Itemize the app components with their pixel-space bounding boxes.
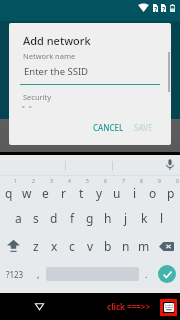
staticText: ? bbox=[162, 5, 166, 13]
button[interactable]: 8 bbox=[126, 176, 144, 204]
staticText: 9 bbox=[158, 178, 161, 185]
button[interactable]: 7 bbox=[108, 176, 126, 204]
staticText: Add network bbox=[23, 33, 91, 48]
staticText: j bbox=[124, 210, 128, 226]
staticText: f bbox=[70, 210, 75, 226]
button[interactable]: 1 bbox=[0, 176, 18, 204]
button[interactable]: 0 bbox=[162, 176, 180, 204]
staticText: e bbox=[42, 185, 49, 201]
staticText: o bbox=[149, 185, 157, 201]
staticText: p bbox=[167, 185, 175, 201]
button[interactable]: a bbox=[9, 204, 27, 232]
staticText: m bbox=[138, 238, 150, 254]
button[interactable]: d bbox=[45, 204, 63, 232]
staticText: l bbox=[160, 210, 164, 226]
button[interactable]: x bbox=[45, 232, 63, 260]
staticText: 5 bbox=[86, 178, 89, 185]
button[interactable]: j bbox=[117, 204, 135, 232]
button[interactable]: 9 bbox=[144, 176, 162, 204]
button[interactable]: z bbox=[27, 232, 45, 260]
staticText: c bbox=[69, 238, 75, 254]
button[interactable]: m bbox=[135, 232, 153, 260]
button[interactable]: 2 bbox=[18, 176, 36, 204]
staticText: v bbox=[87, 238, 94, 254]
staticText: SAVE bbox=[134, 122, 153, 133]
button[interactable]: , bbox=[30, 260, 46, 288]
button[interactable]: g bbox=[81, 204, 99, 232]
staticText: 1 bbox=[14, 178, 17, 185]
staticText: i bbox=[133, 185, 137, 201]
staticText: x bbox=[51, 238, 58, 254]
button[interactable]: 3 bbox=[36, 176, 54, 204]
button[interactable]: k bbox=[135, 204, 153, 232]
button[interactable]: s bbox=[27, 204, 45, 232]
staticText: 4 bbox=[68, 178, 71, 185]
staticText: CANCEL bbox=[93, 122, 124, 133]
staticText: k bbox=[141, 210, 148, 226]
staticText: click ===>> bbox=[107, 301, 150, 312]
staticText: , bbox=[37, 268, 40, 280]
button[interactable]: Back bbox=[31, 298, 48, 315]
staticText: 0 bbox=[176, 178, 179, 185]
staticText: h bbox=[104, 210, 112, 226]
button[interactable]: Backspace bbox=[153, 232, 180, 260]
staticText: s bbox=[33, 210, 39, 226]
button[interactable]: CANCEL bbox=[87, 117, 130, 138]
staticText: Security bbox=[23, 92, 52, 102]
button[interactable]: 6 bbox=[90, 176, 108, 204]
button[interactable]: Enter bbox=[158, 265, 176, 283]
button[interactable]: ?123 bbox=[0, 260, 30, 288]
staticText: 8 bbox=[140, 178, 143, 185]
staticText: Enter the SSID bbox=[24, 65, 89, 78]
button[interactable]: Hide keyboard bbox=[163, 302, 174, 313]
staticText: a bbox=[15, 210, 22, 226]
button[interactable]: 5 bbox=[72, 176, 90, 204]
staticText: ? bbox=[154, 5, 158, 13]
button[interactable]: f bbox=[63, 204, 81, 232]
button[interactable]: c bbox=[63, 232, 81, 260]
staticText: 2 bbox=[32, 178, 35, 185]
staticText: t bbox=[79, 185, 84, 201]
staticText: y bbox=[96, 185, 103, 201]
staticText: b bbox=[104, 238, 112, 254]
staticText: u bbox=[113, 185, 121, 201]
staticText: Network name bbox=[23, 51, 76, 61]
button[interactable]: b bbox=[99, 232, 117, 260]
staticText: 3 bbox=[50, 178, 53, 185]
button[interactable]: v bbox=[81, 232, 99, 260]
staticText: 7 bbox=[122, 178, 125, 185]
staticText: . bbox=[145, 268, 148, 280]
button[interactable]: SAVE bbox=[128, 117, 159, 138]
staticText: n bbox=[122, 238, 130, 254]
button[interactable]: h bbox=[99, 204, 117, 232]
staticText: d bbox=[50, 210, 58, 226]
staticText: q bbox=[5, 185, 13, 201]
button[interactable]: . bbox=[139, 260, 153, 288]
button[interactable]: 4 bbox=[54, 176, 72, 204]
staticText: w bbox=[22, 185, 32, 201]
staticText: z bbox=[33, 238, 39, 254]
button[interactable]: Shift bbox=[0, 232, 27, 260]
button[interactable]: l bbox=[153, 204, 171, 232]
staticText: g bbox=[86, 210, 94, 226]
button[interactable]: n bbox=[117, 232, 135, 260]
staticText: 6 bbox=[104, 178, 107, 185]
button[interactable]: Voice input bbox=[164, 158, 176, 171]
staticText: r bbox=[61, 185, 66, 201]
staticText: ?123 bbox=[6, 269, 24, 280]
